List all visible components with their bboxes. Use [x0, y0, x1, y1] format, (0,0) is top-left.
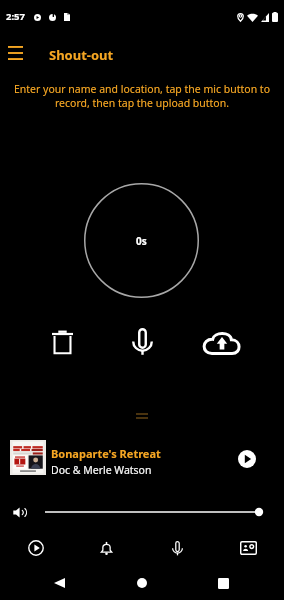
button[interactable]: Home [119, 566, 165, 600]
button[interactable]: Play [229, 441, 265, 477]
staticText: 2:57 [6, 10, 25, 23]
staticText: Enter your name and location, tap the mi… [13, 82, 271, 110]
staticText: 0s [136, 234, 147, 248]
button[interactable]: Delete [40, 320, 84, 364]
button[interactable]: Upload [200, 320, 244, 364]
staticText: Shout-out [49, 46, 114, 64]
button[interactable]: Menu [0, 38, 30, 68]
button[interactable]: Back [36, 566, 82, 600]
button[interactable]: Record [142, 530, 213, 566]
button[interactable]: Record [120, 320, 164, 364]
button[interactable]: Notifications [71, 530, 142, 566]
button[interactable]: Volume slider [45, 506, 267, 518]
button[interactable]: Volume [6, 498, 34, 526]
button[interactable]: Contacts [213, 530, 284, 566]
staticText: Bonaparte's Retreat [51, 446, 161, 461]
staticText: Doc & Merle Watson [51, 463, 152, 477]
button[interactable]: Play [0, 530, 71, 566]
button[interactable]: Recents [200, 566, 246, 600]
